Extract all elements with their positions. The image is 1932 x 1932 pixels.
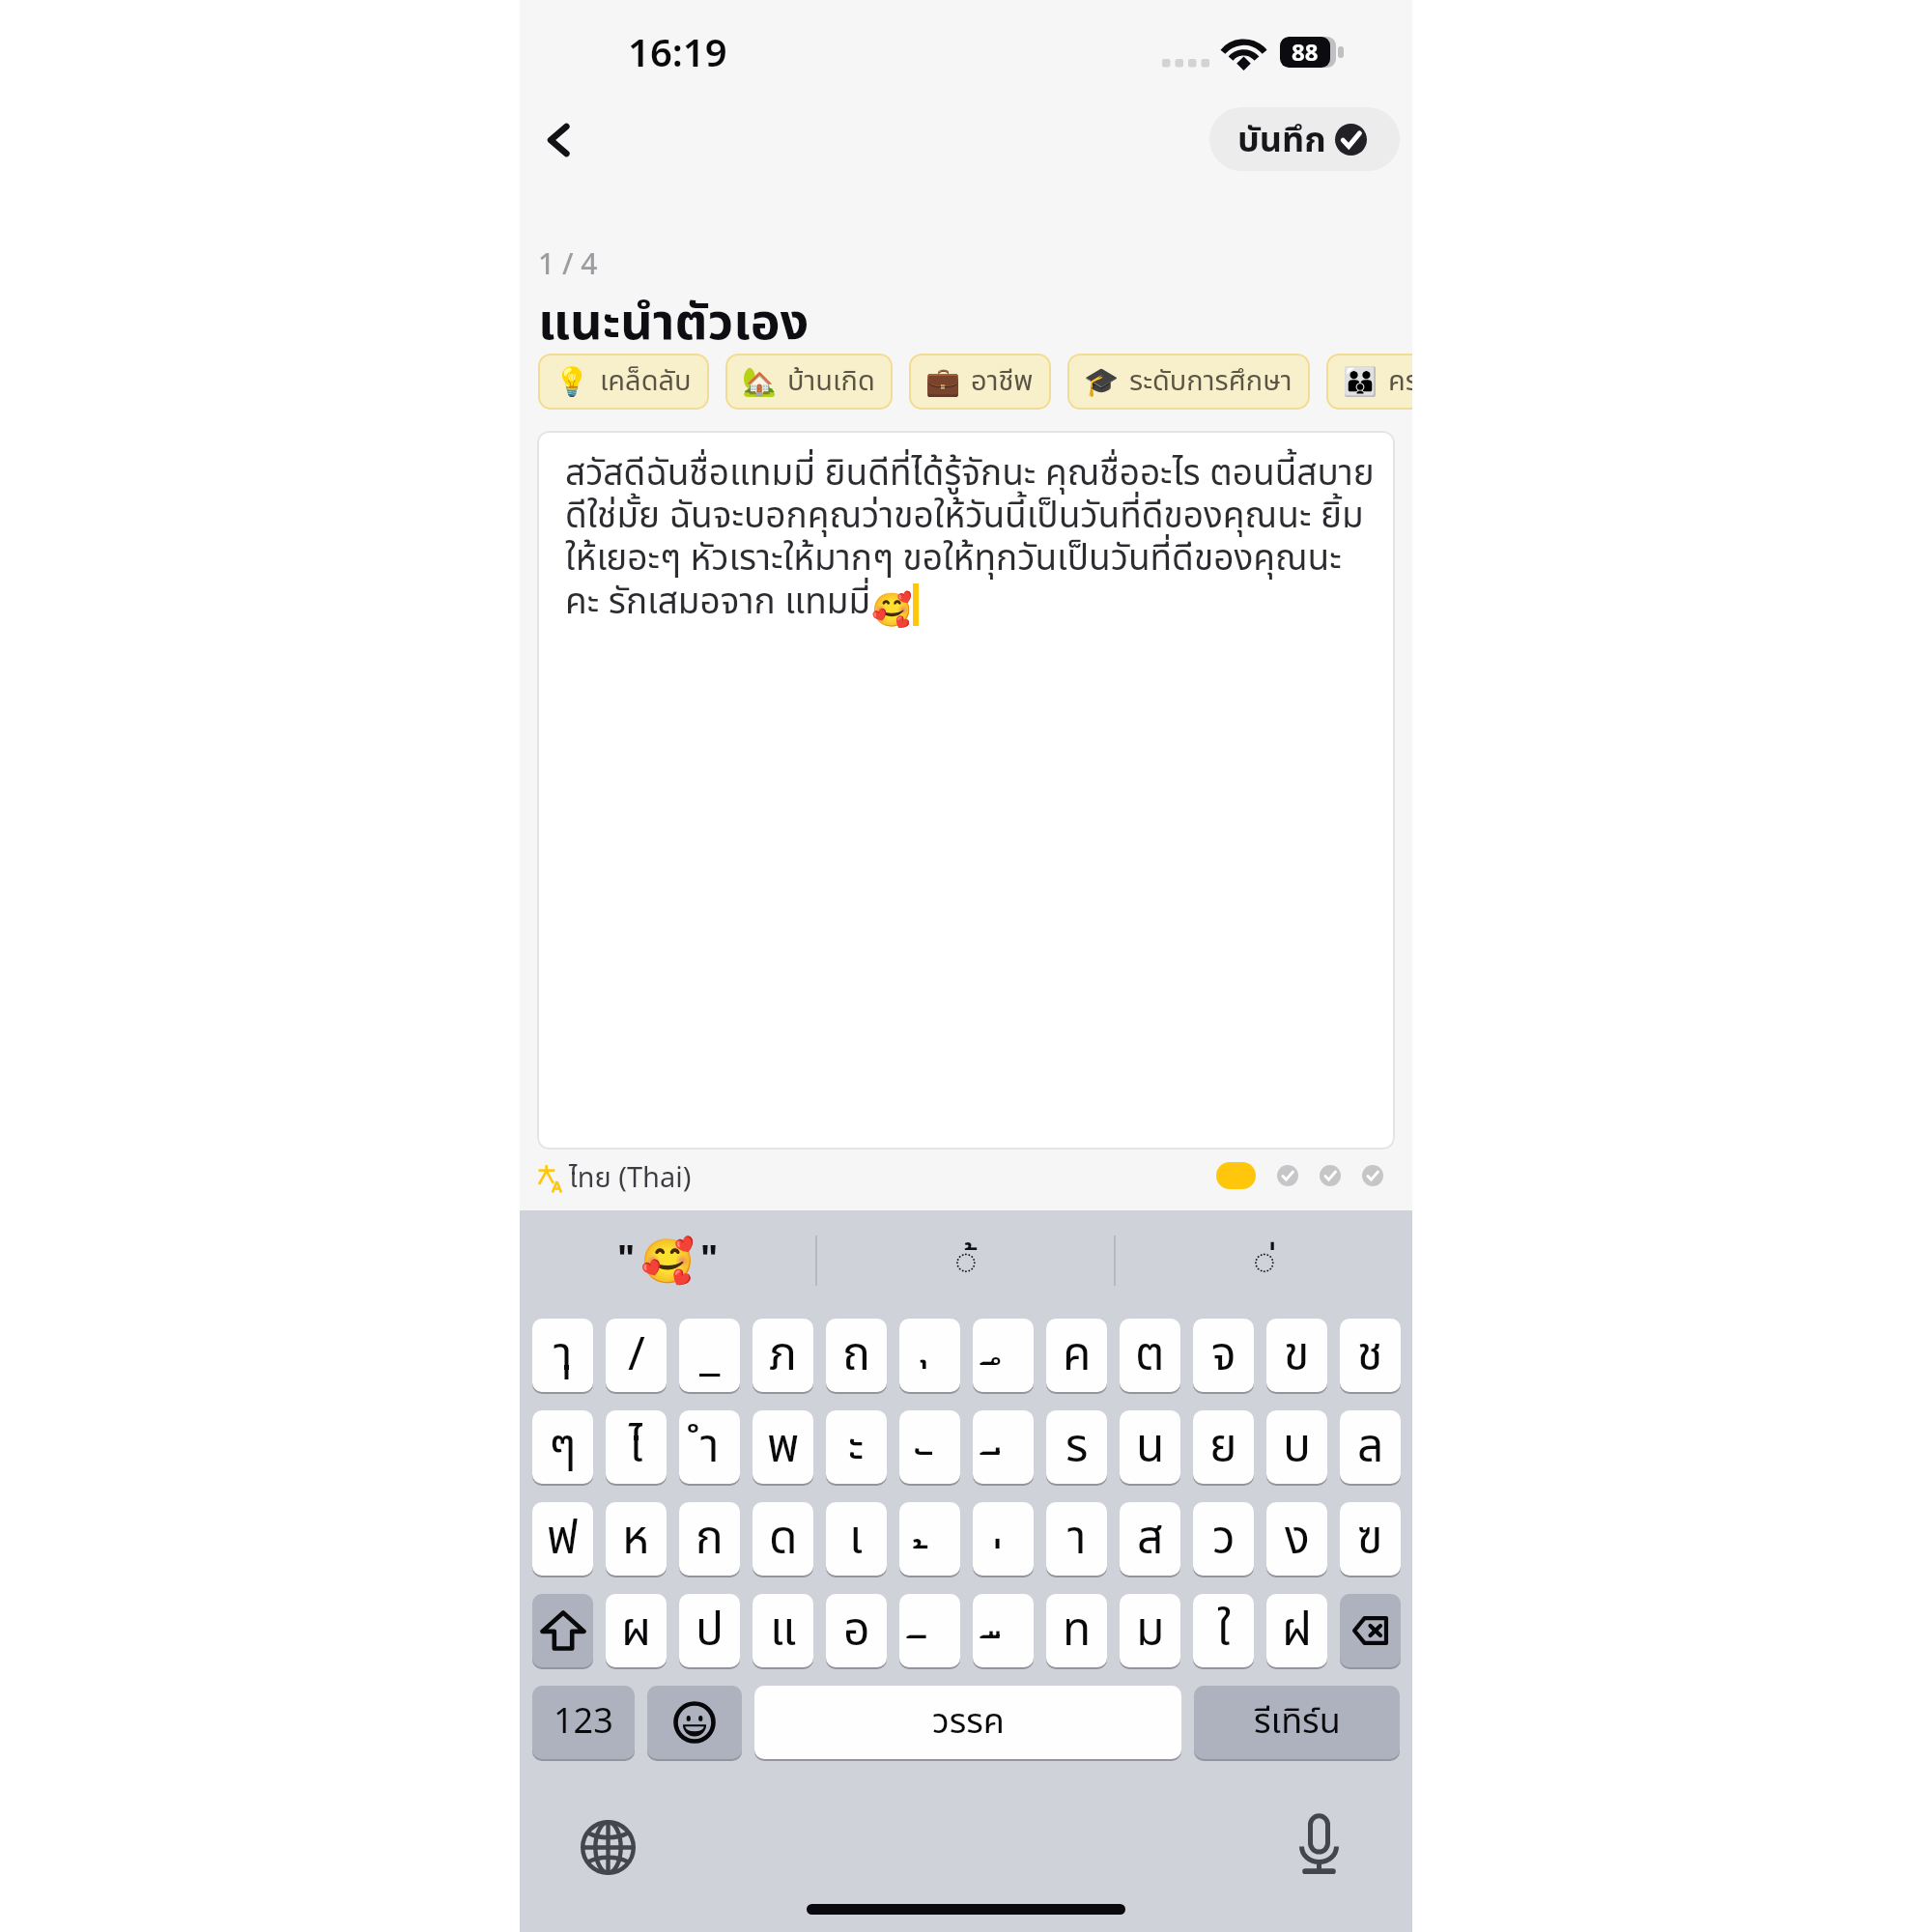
staticText: บ้านเกิด (787, 360, 875, 403)
button[interactable]: 🎓 (1067, 354, 1310, 410)
staticText: ค (1063, 1321, 1092, 1391)
staticText: ◌้ (954, 1234, 978, 1292)
button[interactable]: Switch keyboard (571, 1810, 644, 1884)
staticText: 🎓 (1084, 365, 1120, 398)
staticText: ๆ (549, 1412, 577, 1483)
button[interactable]: ย (1193, 1410, 1254, 1484)
button[interactable]: ◌้ (817, 1210, 1114, 1311)
staticText: ก (696, 1504, 724, 1575)
button[interactable]: น (1120, 1410, 1180, 1484)
button[interactable]: บ (1266, 1410, 1327, 1484)
button[interactable]: ส (1120, 1502, 1180, 1576)
button[interactable]: เ (826, 1502, 887, 1576)
button[interactable]: ๆ (532, 1410, 593, 1484)
staticText: ผ (621, 1596, 652, 1666)
button[interactable]: ะ (826, 1410, 887, 1484)
button[interactable]: ง (1266, 1502, 1327, 1576)
button[interactable]: Shift (532, 1594, 593, 1667)
staticText: แนะนำตัวเอง (538, 286, 810, 362)
button[interactable]: ไ (606, 1410, 667, 1484)
staticText: แ (770, 1596, 797, 1666)
staticText: 1 / 4 (538, 243, 598, 283)
button[interactable]: สวัสดีฉันชื่อแทมมี่ ยินดีที่ได้รู้จักนะ … (537, 431, 1395, 1150)
button[interactable]: ม (1120, 1594, 1180, 1667)
staticText: ๅ (554, 1321, 573, 1391)
button[interactable]: ฃ (1340, 1502, 1401, 1576)
button[interactable]: ใ (1193, 1594, 1254, 1667)
button[interactable]: ว (1193, 1502, 1254, 1576)
button[interactable]: Back (522, 103, 595, 177)
button[interactable]: _ (679, 1319, 740, 1392)
button[interactable]: ข (1266, 1319, 1327, 1392)
staticText: ใ (1217, 1596, 1231, 1666)
button[interactable]: ๅ (532, 1319, 593, 1392)
button[interactable]: ห (606, 1502, 667, 1576)
button[interactable]: ั (899, 1410, 960, 1484)
button[interactable]: ด (753, 1502, 813, 1576)
button[interactable]: ่ (973, 1502, 1034, 1576)
staticText: 👪 (1343, 365, 1378, 398)
staticText: ถ (842, 1321, 870, 1391)
button[interactable]: อ (826, 1594, 887, 1667)
button[interactable]: ร (1046, 1410, 1107, 1484)
staticText: อ (843, 1596, 870, 1666)
staticText: ะ (848, 1412, 865, 1483)
staticText: ไ (629, 1412, 643, 1483)
button[interactable]: รีเทิร์น (1194, 1686, 1400, 1759)
button[interactable]: ฝ (1266, 1594, 1327, 1667)
button[interactable]: ล (1340, 1410, 1401, 1484)
staticText: 💼 (925, 365, 961, 398)
button[interactable]: ◌่ (1116, 1210, 1412, 1311)
button[interactable]: ท (1046, 1594, 1107, 1667)
staticText: ต (1135, 1321, 1165, 1391)
button[interactable]: ถ (826, 1319, 887, 1392)
button[interactable]: Page 3 (1320, 1165, 1341, 1186)
button[interactable]: ช (1340, 1319, 1401, 1392)
button[interactable]: ิ (899, 1594, 960, 1667)
button[interactable]: ไทย (Thai) (538, 1157, 692, 1200)
button[interactable]: ก (679, 1502, 740, 1576)
staticText: 💡 (554, 365, 590, 398)
staticText: วรรค (932, 1696, 1005, 1748)
button[interactable]: Dictate (1282, 1807, 1355, 1881)
button[interactable]: Page 2 (1277, 1165, 1298, 1186)
button[interactable]: บันทึก (1209, 107, 1400, 171)
staticText: ข (1284, 1321, 1310, 1391)
button[interactable]: 🏡 (725, 354, 893, 410)
staticText: 🏡 (742, 365, 778, 398)
button[interactable]: ้ (899, 1502, 960, 1576)
button[interactable]: / (606, 1319, 667, 1392)
button[interactable]: 👪 (1326, 354, 1412, 410)
button[interactable]: ำ (679, 1410, 740, 1484)
button[interactable]: า (1046, 1502, 1107, 1576)
button[interactable]: Emoji (647, 1686, 742, 1759)
staticText: ย (1209, 1412, 1237, 1483)
button[interactable]: ต (1120, 1319, 1180, 1392)
button[interactable]: 123 (532, 1686, 635, 1759)
staticText: ร (1065, 1412, 1089, 1483)
staticText: า (1067, 1504, 1087, 1575)
button[interactable]: ึ (973, 1319, 1034, 1392)
staticText: ฟ (547, 1504, 579, 1575)
button[interactable]: " (520, 1210, 815, 1311)
button[interactable]: ผ (606, 1594, 667, 1667)
button[interactable]: ุ (899, 1319, 960, 1392)
button[interactable]: ฟ (532, 1502, 593, 1576)
button[interactable]: Page 4 (1362, 1165, 1383, 1186)
button[interactable]: ค (1046, 1319, 1107, 1392)
button[interactable]: จ (1193, 1319, 1254, 1392)
button[interactable]: ป (679, 1594, 740, 1667)
staticText: ครอบครัว (1388, 360, 1412, 403)
staticText: 🥰 (871, 590, 913, 629)
button[interactable]: Delete (1340, 1594, 1401, 1667)
button[interactable]: พ (753, 1410, 813, 1484)
button[interactable]: Page 1 (1216, 1162, 1256, 1189)
button[interactable]: 💼 (909, 354, 1051, 410)
button[interactable]: 💡 (538, 354, 709, 410)
staticText: สวัสดีฉันชื่อแทมมี่ ยินดีที่ได้รู้จักนะ … (565, 447, 1395, 586)
button[interactable]: ี (973, 1410, 1034, 1484)
button[interactable]: ื (973, 1594, 1034, 1667)
button[interactable]: ภ (753, 1319, 813, 1392)
button[interactable]: แ (753, 1594, 813, 1667)
button[interactable]: วรรค (754, 1686, 1181, 1759)
